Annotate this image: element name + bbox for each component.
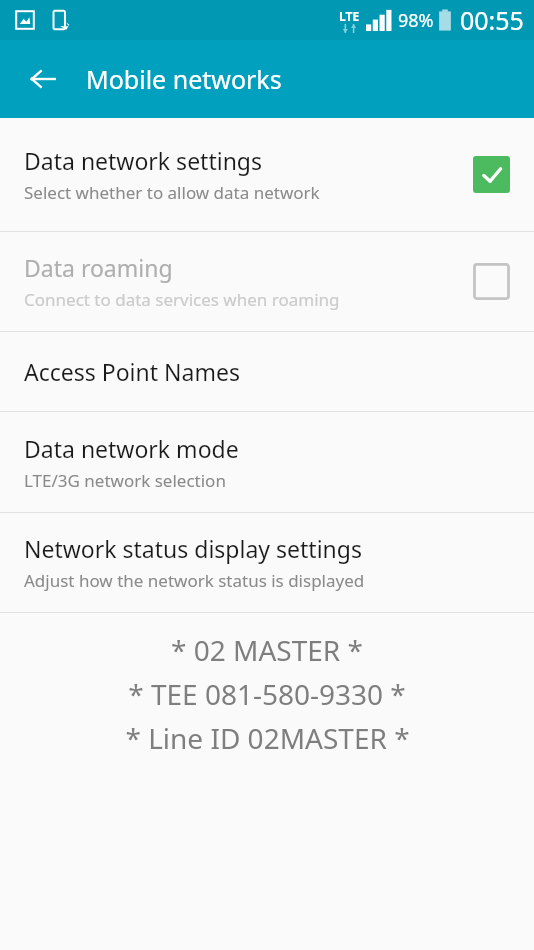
button[interactable]: Data network mode — [0, 412, 534, 512]
staticText: Connect to data services when roaming — [24, 288, 340, 311]
staticText: LTE — [339, 8, 360, 24]
staticText: * TEE 081-580-9330 * — [128, 675, 406, 713]
button[interactable]: Access Point Names — [0, 332, 534, 411]
staticText: Data network settings — [24, 145, 263, 176]
staticText: Network status display settings — [24, 533, 362, 564]
staticText: Select whether to allow data network — [24, 181, 320, 204]
button[interactable]: Data network settings — [0, 118, 534, 231]
staticText: LTE/3G network selection — [24, 469, 226, 492]
staticText: * Line ID 02MASTER * — [125, 719, 410, 757]
button[interactable]: Network status display settings — [0, 513, 534, 612]
button[interactable]: Back — [20, 56, 66, 102]
staticText: 00:55 — [460, 3, 524, 37]
staticText: Adjust how the network status is display… — [24, 569, 365, 592]
staticText: 98% — [398, 8, 434, 33]
staticText: Mobile networks — [86, 62, 282, 96]
staticText: Data network mode — [24, 433, 239, 464]
button[interactable]: Data roaming — [0, 232, 534, 331]
staticText: * 02 MASTER * — [171, 631, 363, 669]
staticText: Data roaming — [24, 252, 173, 283]
staticText: Access Point Names — [24, 356, 240, 387]
button[interactable]: Data network settings checkbox, checked — [473, 156, 510, 193]
button[interactable]: Data roaming checkbox, unchecked — [473, 263, 510, 300]
